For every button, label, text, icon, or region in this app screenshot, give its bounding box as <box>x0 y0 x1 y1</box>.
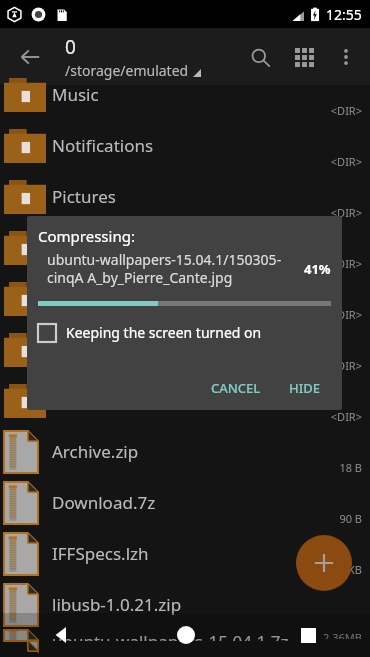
staticText: Archive.zip <box>52 440 139 463</box>
staticText: <DIR> <box>330 154 362 169</box>
staticText: Movies <box>52 389 109 412</box>
button[interactable]: Podcasts <box>0 222 370 273</box>
button[interactable]: 0 <box>65 34 201 80</box>
button[interactable]: Music <box>0 69 370 120</box>
staticText: Music <box>52 83 99 106</box>
button[interactable]: Movies <box>0 375 370 426</box>
staticText: <DIR> <box>330 205 362 220</box>
button[interactable]: Grid view <box>282 35 326 79</box>
staticText: Pictures <box>52 185 116 208</box>
button[interactable]: Back <box>8 35 52 79</box>
button[interactable]: Pictures <box>0 171 370 222</box>
button[interactable]: HIDE <box>279 372 331 404</box>
button[interactable]: Download.7z <box>0 477 370 528</box>
staticText: 90 B <box>339 511 362 526</box>
staticText: <DIR> <box>330 409 362 424</box>
staticText: ubuntu-wallpapers-15.04.1.7z <box>52 630 289 641</box>
button[interactable]: Archive.zip <box>0 426 370 477</box>
button[interactable]: Home <box>124 613 247 657</box>
staticText: <DIR> <box>330 307 362 322</box>
staticText: <DIR> <box>330 358 362 373</box>
staticText: 2.36MB <box>323 630 362 639</box>
button[interactable]: Ringtones <box>0 273 370 324</box>
staticText: IFFSpecs.lzh <box>52 542 149 565</box>
staticText: HIDE <box>289 379 321 397</box>
staticText: Download.7z <box>52 491 156 514</box>
button[interactable]: Add <box>296 535 352 591</box>
staticText: 12:55 <box>326 5 362 24</box>
staticText: <DIR> <box>330 256 362 271</box>
staticText: 41% <box>304 260 331 278</box>
button[interactable]: Keeping the screen turned on <box>38 320 262 345</box>
button[interactable]: Back <box>0 613 124 657</box>
button[interactable]: Notifications <box>0 120 370 171</box>
staticText: Notifications <box>52 134 154 157</box>
staticText: Keeping the screen turned on <box>66 323 262 342</box>
button[interactable]: IFFSpecs.lzh <box>0 528 370 579</box>
staticText: /storage/emulated <box>65 61 189 80</box>
staticText: 0 <box>65 34 76 60</box>
button[interactable]: Search <box>238 35 282 79</box>
button[interactable]: More options <box>326 37 366 77</box>
button[interactable]: ubuntu-wallpapers-15.04.1.7z <box>0 630 370 641</box>
staticText: Podcasts <box>52 236 124 259</box>
staticText: Ringtones <box>52 287 133 310</box>
staticText: CANCEL <box>211 379 261 397</box>
staticText: ubuntu-wallpapers-15.04.1/150305-cinqA A… <box>47 250 300 287</box>
staticText: libusb-1.0.21.zip <box>52 593 182 616</box>
staticText: <DIR> <box>330 103 362 118</box>
button[interactable]: Recent apps <box>247 613 370 657</box>
staticText: 319.07KB <box>313 562 362 577</box>
staticText: Compressing: <box>38 226 135 246</box>
button[interactable]: libusb-1.0.21.zip <box>0 579 370 630</box>
staticText: 18 B <box>339 460 362 475</box>
button[interactable]: Documents <box>0 324 370 375</box>
staticText: Documents <box>52 338 144 361</box>
button[interactable]: CANCEL <box>201 372 271 404</box>
